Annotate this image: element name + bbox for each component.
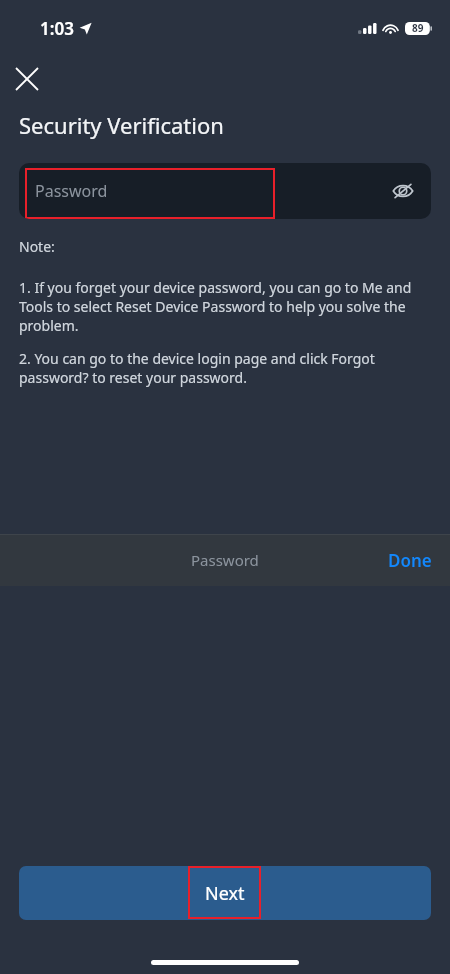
staticText: Next <box>205 881 245 906</box>
button[interactable]: Close <box>0 56 54 102</box>
staticText: 2. You can go to the device login page a… <box>19 349 431 387</box>
button[interactable]: Done <box>370 537 450 584</box>
staticText: Password <box>35 180 108 202</box>
button[interactable]: Next <box>19 866 431 920</box>
staticText: Security Verification <box>19 110 224 140</box>
staticText: Note: <box>19 237 55 256</box>
staticText: 1. If you forget your device password, y… <box>19 278 431 335</box>
staticText: Done <box>388 549 432 572</box>
button[interactable]: Password <box>19 180 387 202</box>
staticText: Password <box>191 550 259 570</box>
staticText: 1:03 <box>40 17 74 40</box>
button[interactable]: Show password <box>381 169 425 213</box>
staticText: 89 <box>412 21 424 35</box>
